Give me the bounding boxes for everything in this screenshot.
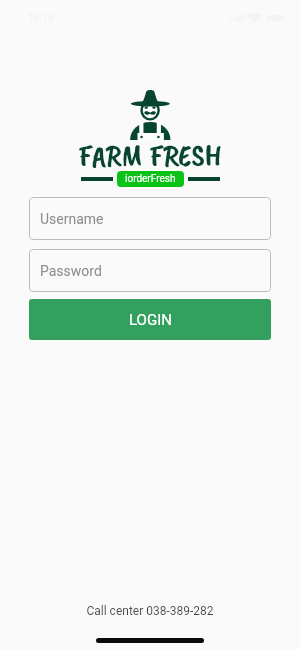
staticText: Username bbox=[40, 211, 104, 227]
staticText: iorderFresh bbox=[125, 173, 176, 185]
button[interactable]: Username bbox=[29, 197, 271, 240]
staticText: Password bbox=[40, 263, 102, 279]
staticText: FARM FRESH bbox=[78, 136, 222, 175]
button[interactable]: Password bbox=[29, 249, 271, 292]
staticText: Call center 038-389-282 bbox=[86, 604, 214, 618]
staticText: LOGIN bbox=[129, 311, 172, 329]
button[interactable]: Call center 038-389-282 bbox=[76, 601, 224, 621]
button[interactable]: LOGIN bbox=[29, 299, 271, 340]
